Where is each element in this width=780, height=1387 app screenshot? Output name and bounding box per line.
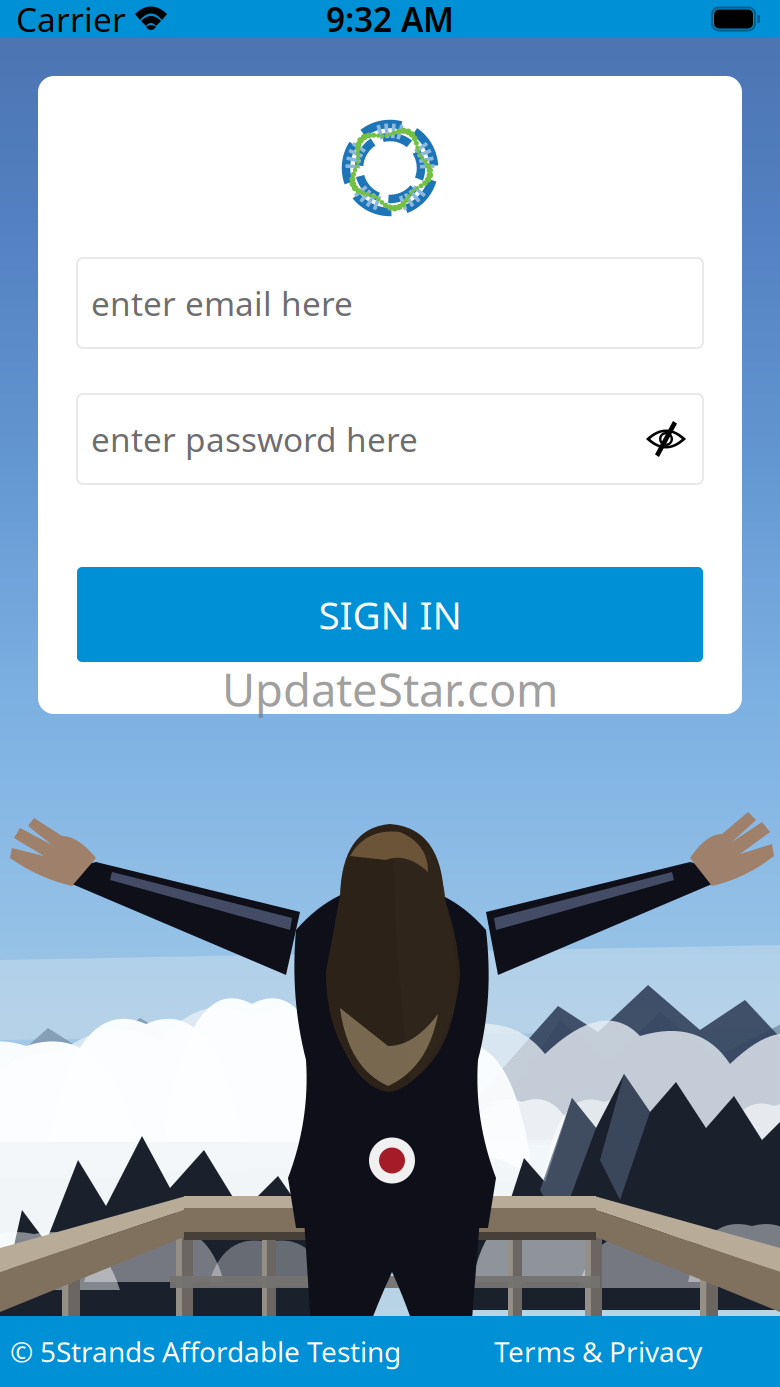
button[interactable]: © 5Strands Affordable Testing [10,1333,401,1370]
staticText: UpdateStar.com [222,659,558,719]
staticText: Terms & Privacy [494,1333,702,1370]
staticText: © 5Strands Affordable Testing [10,1333,401,1370]
staticText: SIGN IN [318,589,461,640]
button[interactable]: enter email here [77,258,703,348]
staticText: enter password here [91,417,418,461]
staticText: 9:32 AM [326,0,454,41]
staticText: Carrier [16,0,126,41]
button[interactable]: SIGN IN [77,567,703,662]
button[interactable]: Terms & Privacy [494,1333,702,1370]
staticText: enter email here [91,281,353,325]
button[interactable]: enter password here [77,394,703,484]
